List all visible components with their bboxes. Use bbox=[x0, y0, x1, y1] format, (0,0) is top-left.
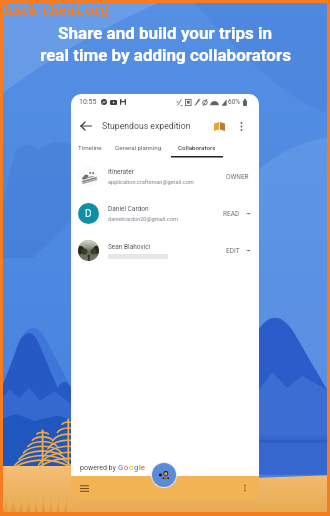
staticText: 60% bbox=[228, 98, 241, 106]
staticText: real time by adding collaborators bbox=[40, 45, 291, 65]
staticText: Collaborators bbox=[178, 144, 216, 151]
button[interactable]: Collaborators bbox=[174, 141, 220, 154]
staticText: g bbox=[134, 463, 139, 472]
staticText: D bbox=[85, 208, 92, 220]
staticText: READ bbox=[223, 210, 240, 218]
staticText: powered by bbox=[80, 464, 118, 472]
staticText: o bbox=[124, 463, 129, 472]
staticText: Share and build your trips in bbox=[58, 23, 272, 43]
button[interactable]: Itinerater bbox=[71, 158, 259, 195]
button[interactable]: Timeline bbox=[74, 141, 106, 154]
staticText: Timeline bbox=[78, 144, 102, 151]
staticText: Sean Blahovici bbox=[108, 243, 151, 251]
staticText: o bbox=[129, 463, 134, 472]
button[interactable]: D bbox=[71, 195, 259, 232]
staticText: hack-cheat.org bbox=[4, 0, 110, 19]
button[interactable]: Menu bbox=[75, 479, 93, 497]
staticText: General planning bbox=[115, 144, 162, 151]
button[interactable]: Map bbox=[209, 116, 229, 136]
staticText: l bbox=[139, 463, 141, 472]
staticText: Daniel Cardon bbox=[108, 205, 149, 213]
staticText: OWNER bbox=[226, 173, 249, 181]
button[interactable]: More options bbox=[231, 116, 251, 136]
staticText: G bbox=[118, 463, 124, 472]
staticText: Itinerater bbox=[108, 168, 134, 176]
staticText: Stupendous expedition bbox=[102, 121, 191, 131]
button[interactable]: Sean Blahovici bbox=[71, 232, 259, 269]
button[interactable]: Back bbox=[75, 115, 97, 137]
button[interactable]: General planning bbox=[111, 141, 166, 154]
staticText: 10:55 bbox=[79, 98, 97, 106]
staticText: application.craftsman@gmail.com bbox=[108, 179, 194, 186]
staticText: e bbox=[141, 463, 145, 472]
button[interactable]: More bbox=[236, 479, 254, 497]
button[interactable]: Add collaborator bbox=[152, 463, 176, 487]
staticText: danielcardon20@gmail.com bbox=[108, 216, 178, 223]
staticText: EDIT bbox=[226, 247, 240, 255]
